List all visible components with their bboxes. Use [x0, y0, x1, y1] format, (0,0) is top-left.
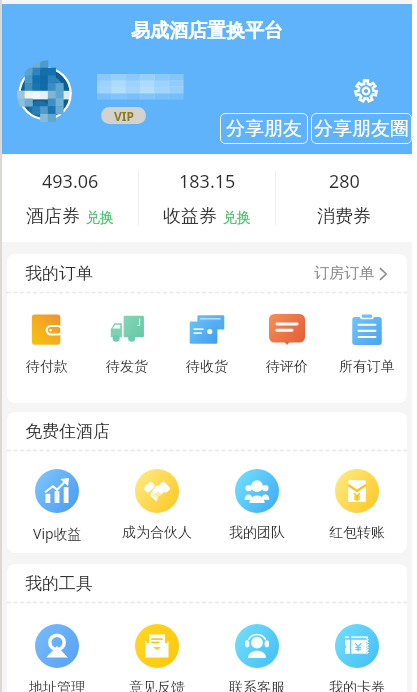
staticText: VIP	[114, 108, 134, 124]
button[interactable]: 意见反馈	[107, 624, 207, 692]
staticText: 待付款	[26, 358, 68, 376]
button[interactable]: 待收货	[167, 314, 247, 376]
button[interactable]: 分享朋友	[220, 113, 308, 144]
staticText: 收益券	[163, 205, 217, 228]
staticText: 分享朋友	[226, 117, 302, 141]
button[interactable]: VIP	[101, 107, 146, 124]
staticText: 所有订单	[339, 358, 395, 376]
button[interactable]: 地址管理	[7, 624, 107, 692]
staticText: 待发货	[106, 358, 148, 376]
staticText: 分享朋友圈	[314, 117, 409, 141]
staticText: 成为合伙人	[122, 524, 192, 542]
staticText: 我的团队	[229, 524, 285, 542]
button[interactable]: 联系客服	[207, 624, 307, 692]
button[interactable]: 待评价	[247, 314, 327, 376]
staticText: 酒店券	[26, 205, 80, 228]
staticText: 183.15	[179, 169, 236, 194]
staticText: 待收货	[186, 358, 228, 376]
button[interactable]: 待付款	[7, 314, 87, 376]
staticText: 免费住酒店	[25, 421, 110, 442]
staticText: Vip收益	[33, 524, 82, 543]
button[interactable]: 我的团队	[207, 469, 307, 542]
button[interactable]: Profile avatar	[17, 60, 84, 127]
staticText: 消费券	[317, 205, 371, 228]
button[interactable]: 280	[276, 154, 412, 242]
button[interactable]: 红包转账	[307, 469, 407, 542]
staticText: 兑换	[86, 209, 114, 227]
staticText: 订房订单	[314, 264, 374, 283]
staticText: 意见反馈	[129, 679, 185, 692]
staticText: 红包转账	[329, 524, 385, 542]
button[interactable]: Vip收益	[7, 469, 107, 543]
button[interactable]: 分享朋友圈	[311, 113, 412, 144]
button[interactable]: 成为合伙人	[107, 469, 207, 542]
staticText: 493.06	[42, 169, 99, 194]
staticText: 易成酒店置换平台	[131, 19, 283, 43]
button[interactable]: 订房订单	[314, 258, 387, 289]
staticText: 我的订单	[25, 263, 93, 284]
staticText: 联系客服	[229, 679, 285, 692]
button[interactable]: 我的卡券	[307, 624, 407, 692]
button[interactable]: Settings	[354, 79, 378, 103]
staticText: 我的工具	[25, 573, 93, 594]
staticText: 280	[329, 169, 360, 194]
staticText: 地址管理	[29, 679, 85, 692]
staticText: 待评价	[266, 358, 308, 376]
button[interactable]: 所有订单	[327, 314, 407, 376]
button[interactable]: 493.06	[2, 154, 138, 242]
button[interactable]: 183.15	[139, 154, 275, 242]
button[interactable]: 待发货	[87, 314, 167, 376]
staticText: 兑换	[223, 209, 251, 227]
staticText: 我的卡券	[329, 679, 385, 692]
